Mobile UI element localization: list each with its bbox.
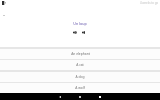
button[interactable]: Play slowly bbox=[79, 29, 88, 36]
button[interactable]: A wolf bbox=[0, 83, 160, 93]
button[interactable]: Back bbox=[1, 12, 7, 18]
staticText: A wolf bbox=[75, 85, 85, 89]
staticText: An elephant bbox=[71, 51, 90, 55]
staticText: A dog bbox=[75, 74, 85, 78]
staticText: Un loup bbox=[73, 21, 87, 26]
button[interactable]: Back bbox=[51, 93, 69, 100]
staticText: A cat bbox=[76, 62, 84, 66]
button[interactable]: An elephant bbox=[0, 49, 160, 59]
button[interactable]: A cat bbox=[0, 60, 160, 70]
staticText: 4 weeks to go bbox=[140, 1, 159, 5]
button[interactable]: Recent apps bbox=[91, 93, 109, 100]
button[interactable]: Home bbox=[71, 93, 89, 100]
button[interactable]: Play sound bbox=[70, 29, 79, 36]
button[interactable]: A dog bbox=[0, 72, 160, 82]
